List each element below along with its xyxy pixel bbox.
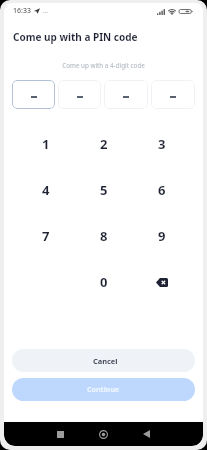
button[interactable]: 6 <box>133 167 191 213</box>
button[interactable]: 8 <box>75 213 133 259</box>
button[interactable]: Backspace <box>133 259 191 305</box>
staticText: Come up with a 4-digit code <box>4 61 203 70</box>
button[interactable]: 3 <box>133 121 191 167</box>
button[interactable]: 0 <box>75 259 133 305</box>
button[interactable]: PIN digit 2 <box>58 80 101 109</box>
staticText: Continue <box>87 384 120 394</box>
staticText: 16:33 <box>13 6 31 16</box>
staticText: 0 <box>100 273 108 291</box>
button[interactable]: Back <box>143 430 150 438</box>
staticText: Come up with a PIN code <box>13 30 138 44</box>
staticText: 8 <box>100 227 108 245</box>
button[interactable]: 1 <box>16 121 75 167</box>
button[interactable]: 2 <box>75 121 133 167</box>
button[interactable]: PIN digit 1 <box>12 80 55 109</box>
button[interactable]: PIN digit 3 <box>104 80 148 109</box>
staticText: ... <box>43 7 48 15</box>
button[interactable]: 4 <box>16 167 75 213</box>
button[interactable]: Cancel <box>12 349 195 372</box>
button[interactable]: Continue <box>12 378 195 401</box>
button[interactable]: PIN digit 4 <box>151 80 195 109</box>
staticText: Cancel <box>93 356 118 366</box>
staticText: 6 <box>158 181 166 199</box>
staticText: 4 <box>42 181 50 199</box>
staticText: 9 <box>158 227 166 245</box>
button[interactable]: 7 <box>16 213 75 259</box>
button[interactable]: 5 <box>75 167 133 213</box>
staticText: 7 <box>42 227 50 245</box>
staticText: 3 <box>158 135 166 153</box>
staticText: 1 <box>42 135 50 153</box>
staticText: 2 <box>100 135 108 153</box>
button[interactable]: 9 <box>133 213 191 259</box>
staticText: 5 <box>100 181 108 199</box>
button[interactable]: Home <box>99 430 108 439</box>
